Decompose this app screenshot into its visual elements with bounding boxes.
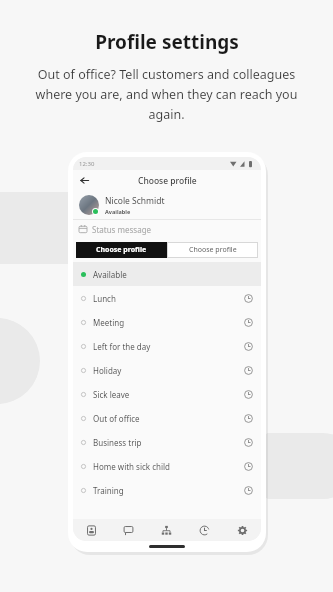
- button[interactable]: Set timer for Holiday: [244, 366, 253, 375]
- staticText: Out of office? Tell customers and collea…: [20, 66, 313, 123]
- staticText: Sick leave: [93, 389, 130, 400]
- button[interactable]: Settings: [223, 519, 261, 541]
- staticText: Meeting: [93, 317, 125, 328]
- button[interactable]: Set timer for Meeting: [244, 318, 253, 327]
- staticText: Available: [93, 269, 127, 280]
- button[interactable]: Set timer for Home with sick child: [244, 462, 253, 471]
- button[interactable]: Sick leave: [73, 382, 261, 406]
- staticText: Choose profile: [138, 175, 197, 187]
- staticText: Profile settings: [95, 29, 239, 55]
- button[interactable]: History: [185, 519, 223, 541]
- button[interactable]: Available: [73, 262, 261, 286]
- button[interactable]: Holiday: [73, 358, 261, 382]
- button[interactable]: Set timer for Left for the day: [244, 342, 253, 351]
- staticText: Left for the day: [93, 341, 151, 352]
- button[interactable]: Set timer for Sick leave: [244, 390, 253, 399]
- staticText: Choose profile: [189, 245, 237, 255]
- button[interactable]: Org chart: [147, 519, 185, 541]
- button[interactable]: Set timer for Out of office: [244, 414, 253, 423]
- staticText: Lunch: [93, 293, 116, 304]
- button[interactable]: Set timer for Training: [244, 486, 253, 495]
- staticText: Out of office: [93, 413, 140, 424]
- button[interactable]: Out of office: [73, 406, 261, 430]
- button[interactable]: Status message: [73, 220, 261, 238]
- button[interactable]: Set timer for Business trip: [244, 438, 253, 447]
- staticText: Available: [105, 208, 131, 215]
- button[interactable]: Home with sick child: [73, 454, 261, 478]
- button[interactable]: Nicole Schmidt: [73, 191, 261, 219]
- staticText: 12:30: [79, 160, 95, 168]
- staticText: Training: [93, 485, 124, 496]
- button[interactable]: Choose profile: [167, 242, 258, 258]
- staticText: Business trip: [93, 437, 142, 448]
- button[interactable]: Training: [73, 478, 261, 502]
- button[interactable]: Messages: [110, 519, 147, 541]
- staticText: Nicole Schmidt: [105, 195, 165, 207]
- button[interactable]: Lunch: [73, 286, 261, 310]
- button[interactable]: Back: [77, 173, 92, 188]
- button[interactable]: Meeting: [73, 310, 261, 334]
- button[interactable]: Contacts: [73, 519, 110, 541]
- staticText: Home with sick child: [93, 461, 171, 472]
- button[interactable]: Left for the day: [73, 334, 261, 358]
- staticText: Choose profile: [96, 245, 147, 255]
- button[interactable]: Set timer for Lunch: [244, 294, 253, 303]
- staticText: Holiday: [93, 365, 122, 376]
- staticText: Status message: [92, 224, 152, 235]
- button[interactable]: Business trip: [73, 430, 261, 454]
- button[interactable]: Choose profile: [76, 242, 167, 258]
